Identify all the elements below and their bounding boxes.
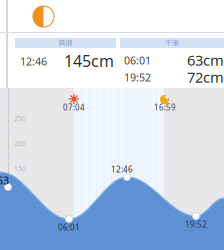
staticText: 19:52 bbox=[124, 70, 151, 84]
staticText: 200 bbox=[14, 139, 26, 148]
staticText: 150 bbox=[14, 164, 26, 173]
staticText: 06:01 bbox=[58, 222, 80, 233]
button[interactable]: Moon phase bbox=[33, 6, 54, 27]
staticText: 干潮 bbox=[165, 39, 179, 47]
staticText: 07:04 bbox=[63, 102, 85, 113]
staticText: 12:46 bbox=[20, 54, 47, 68]
staticText: 72cm bbox=[187, 67, 224, 87]
staticText: 145cm bbox=[64, 50, 114, 72]
staticText: 63cm bbox=[187, 50, 224, 70]
staticText: 19:52 bbox=[185, 219, 207, 230]
staticText: 12:46 bbox=[111, 164, 133, 175]
staticText: 250 bbox=[14, 114, 26, 123]
staticText: 06:01 bbox=[124, 53, 151, 67]
staticText: 16:59 bbox=[154, 102, 176, 113]
staticText: 53 bbox=[0, 173, 9, 187]
staticText: 満潮 bbox=[58, 39, 72, 47]
